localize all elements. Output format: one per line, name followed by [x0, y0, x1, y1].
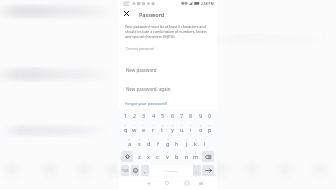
button[interactable]: !	[182, 149, 191, 163]
staticText: [	[162, 123, 163, 126]
staticText: s	[138, 140, 141, 148]
staticText: w	[132, 126, 137, 134]
button[interactable]: 5	[158, 109, 167, 123]
staticText: 9	[199, 112, 203, 119]
staticText: Your password must be at least 6 charact…	[125, 24, 207, 39]
button[interactable]: :	[163, 149, 172, 163]
staticText: v	[166, 153, 169, 161]
staticText: 7	[180, 112, 184, 119]
button[interactable]: }	[205, 122, 214, 136]
staticText: #	[139, 137, 141, 140]
staticText: ;	[176, 150, 177, 153]
button[interactable]: 1	[121, 109, 130, 123]
button[interactable]: 3	[139, 109, 148, 123]
button[interactable]: New password	[118, 64, 217, 75]
button[interactable]: @	[125, 136, 134, 150]
staticText: 8	[189, 112, 193, 119]
button[interactable]: *	[135, 149, 144, 163]
staticText: $	[148, 137, 150, 140]
button[interactable]: -	[172, 136, 181, 150]
button[interactable]: "	[144, 149, 153, 163]
staticText: n	[185, 153, 189, 161]
button[interactable]: &	[163, 136, 172, 150]
staticText: .	[196, 168, 198, 174]
staticText: r	[152, 126, 155, 134]
staticText: ,	[144, 168, 146, 174]
staticText: New password	[126, 67, 157, 73]
button[interactable]: 9	[196, 109, 205, 123]
button[interactable]: [	[158, 122, 167, 136]
button[interactable]: Symbols	[121, 165, 129, 176]
staticText: 4	[152, 112, 156, 119]
button[interactable]: ]	[168, 122, 177, 136]
button[interactable]: |	[139, 122, 148, 136]
button[interactable]: ;	[172, 149, 181, 163]
staticText: Password	[139, 11, 165, 18]
button[interactable]: Forgot your password?	[121, 99, 172, 108]
button[interactable]: {	[196, 122, 205, 136]
button[interactable]: Current password	[118, 44, 217, 53]
button[interactable]: <	[177, 122, 186, 136]
button[interactable]: $	[144, 136, 153, 150]
button[interactable]: Back	[142, 177, 154, 189]
button[interactable]: #	[135, 136, 144, 150]
staticText: (	[195, 137, 196, 140]
staticText: Current password	[126, 46, 155, 51]
button[interactable]: =	[149, 122, 158, 136]
staticText: 2:58 PM	[201, 1, 214, 6]
staticText: <	[181, 123, 183, 126]
button[interactable]: Enter	[202, 165, 214, 176]
button[interactable]: %	[121, 122, 130, 136]
staticText: b	[175, 153, 179, 161]
staticText: 2	[133, 112, 137, 119]
staticText: f	[157, 140, 159, 148]
staticText: u	[180, 126, 184, 134]
staticText: z	[138, 153, 141, 161]
button[interactable]: Hide keyboard	[195, 177, 207, 189]
button[interactable]: _	[153, 136, 162, 150]
button[interactable]: Comma	[141, 165, 149, 176]
button[interactable]: 0	[205, 109, 214, 123]
staticText: 6	[171, 112, 175, 119]
button[interactable]: 2	[130, 109, 139, 123]
button[interactable]: Home	[161, 177, 173, 189]
staticText: c	[156, 153, 159, 161]
button[interactable]: '	[153, 149, 162, 163]
staticText: g	[166, 140, 170, 148]
staticText: 1	[124, 112, 128, 119]
button[interactable]: Emoji	[131, 165, 139, 176]
button[interactable]: Backspace	[202, 151, 214, 162]
button[interactable]: Period	[193, 165, 201, 176]
staticText: !	[186, 150, 187, 153]
button[interactable]: Close	[121, 8, 132, 19]
button[interactable]: 8	[186, 109, 195, 123]
staticText: >	[190, 123, 192, 126]
staticText: q	[124, 126, 128, 134]
staticText: Forgot your password?	[125, 101, 168, 106]
button[interactable]: ?	[191, 149, 200, 163]
staticText: 0	[208, 112, 212, 119]
button[interactable]: Recents	[181, 177, 193, 189]
staticText: )	[204, 137, 205, 140]
staticText: 5	[161, 112, 165, 119]
button[interactable]: >	[186, 122, 195, 136]
button[interactable]: Space	[150, 165, 192, 176]
staticText: k	[194, 140, 197, 148]
button[interactable]: 7	[177, 109, 186, 123]
button[interactable]: New password, again	[118, 83, 217, 94]
staticText: m	[193, 153, 199, 161]
button[interactable]: (	[191, 136, 200, 150]
staticText: '	[157, 150, 158, 153]
button[interactable]: +	[182, 136, 191, 150]
button[interactable]: 6	[168, 109, 177, 123]
staticText: :	[167, 150, 168, 153]
staticText: =	[153, 123, 155, 126]
button[interactable]: \	[130, 122, 139, 136]
staticText: @	[128, 137, 131, 140]
staticText: {	[200, 123, 201, 126]
button[interactable]: )	[200, 136, 209, 150]
button[interactable]: Shift	[121, 151, 133, 162]
button[interactable]: 4	[149, 109, 158, 123]
staticText: o	[199, 126, 203, 134]
